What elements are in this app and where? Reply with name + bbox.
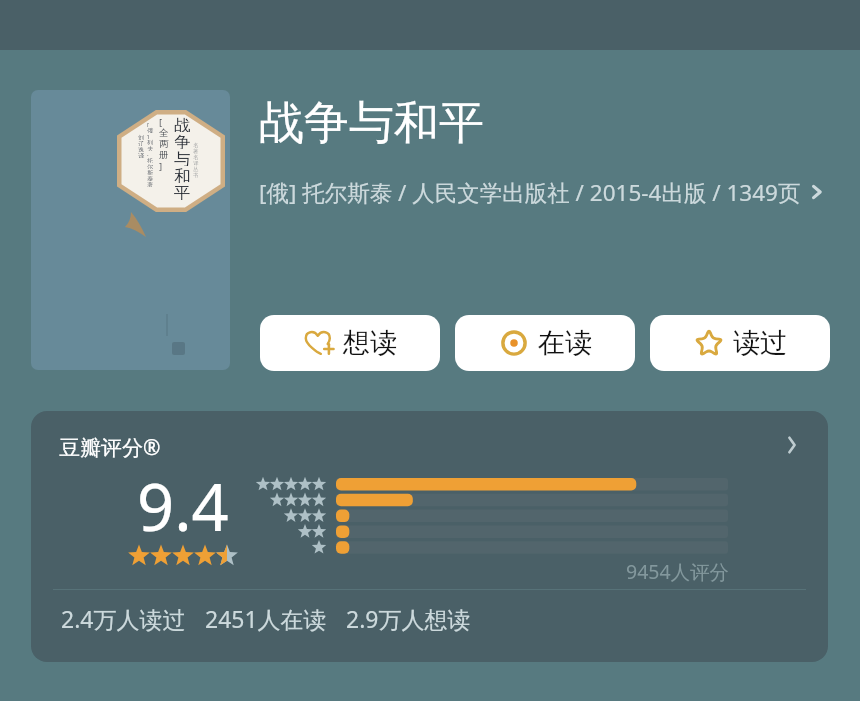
staticText: 想读 [343, 326, 397, 360]
staticText: 2.4万人读过 [61, 603, 186, 634]
staticText: ] [147, 133, 150, 139]
button[interactable]: 读过 [650, 315, 830, 371]
staticText: 斯 [147, 169, 154, 175]
staticText: 争 [174, 132, 191, 149]
staticText: 泰 [147, 175, 154, 181]
button[interactable]: [俄] 托尔斯泰 / 人民文学出版社 / 2015-4出版 / 1349页 [259, 174, 827, 210]
staticText: 册 [159, 149, 169, 160]
staticText: 辽 [138, 140, 145, 146]
staticText: 9.4 [137, 462, 229, 551]
button[interactable]: 想读 [260, 315, 440, 371]
staticText: [俄] 托尔斯泰 / 人民文学出版社 / 2015-4出版 / 1349页 [259, 177, 801, 208]
staticText: ] [159, 160, 163, 171]
staticText: 书 [193, 172, 199, 178]
staticText: [ [159, 116, 163, 127]
staticText: 著 [147, 181, 154, 187]
staticText: 夫 [147, 145, 154, 151]
staticText: 战 [174, 115, 191, 132]
staticText: 读过 [733, 326, 787, 360]
staticText: 和 [174, 166, 191, 183]
staticText: 2451人在读 [205, 603, 327, 634]
button[interactable]: Book cover 战争与和平 [31, 90, 230, 370]
button[interactable]: 在读 [455, 315, 635, 371]
staticText: 列 [147, 139, 154, 145]
staticText: 名 [193, 154, 199, 160]
staticText: 著 [193, 148, 199, 154]
staticText: 与 [174, 149, 191, 166]
staticText: 在读 [538, 326, 592, 360]
button[interactable]: 豆瓣评分® [31, 411, 828, 662]
staticText: 平 [174, 183, 191, 200]
staticText: · [147, 151, 149, 157]
staticText: 尔 [147, 163, 154, 169]
staticText: 托 [147, 157, 154, 163]
staticText: 逸 [138, 146, 145, 152]
staticText: 刘 [138, 134, 145, 140]
staticText: 丛 [193, 166, 199, 172]
staticText: 9454人评分 [626, 558, 730, 585]
staticText: [ [147, 121, 150, 127]
staticText: 译 [193, 160, 199, 166]
staticText: 两 [159, 138, 169, 149]
staticText: 译 [138, 152, 145, 158]
staticText: 俄 [147, 127, 154, 133]
button[interactable]: More ratings [779, 432, 805, 458]
staticText: 豆瓣评分® [59, 433, 161, 462]
staticText: 全 [159, 127, 169, 138]
staticText: 战争与和平 [259, 95, 484, 152]
staticText: 2.9万人想读 [346, 603, 471, 634]
staticText: 名 [193, 142, 199, 148]
